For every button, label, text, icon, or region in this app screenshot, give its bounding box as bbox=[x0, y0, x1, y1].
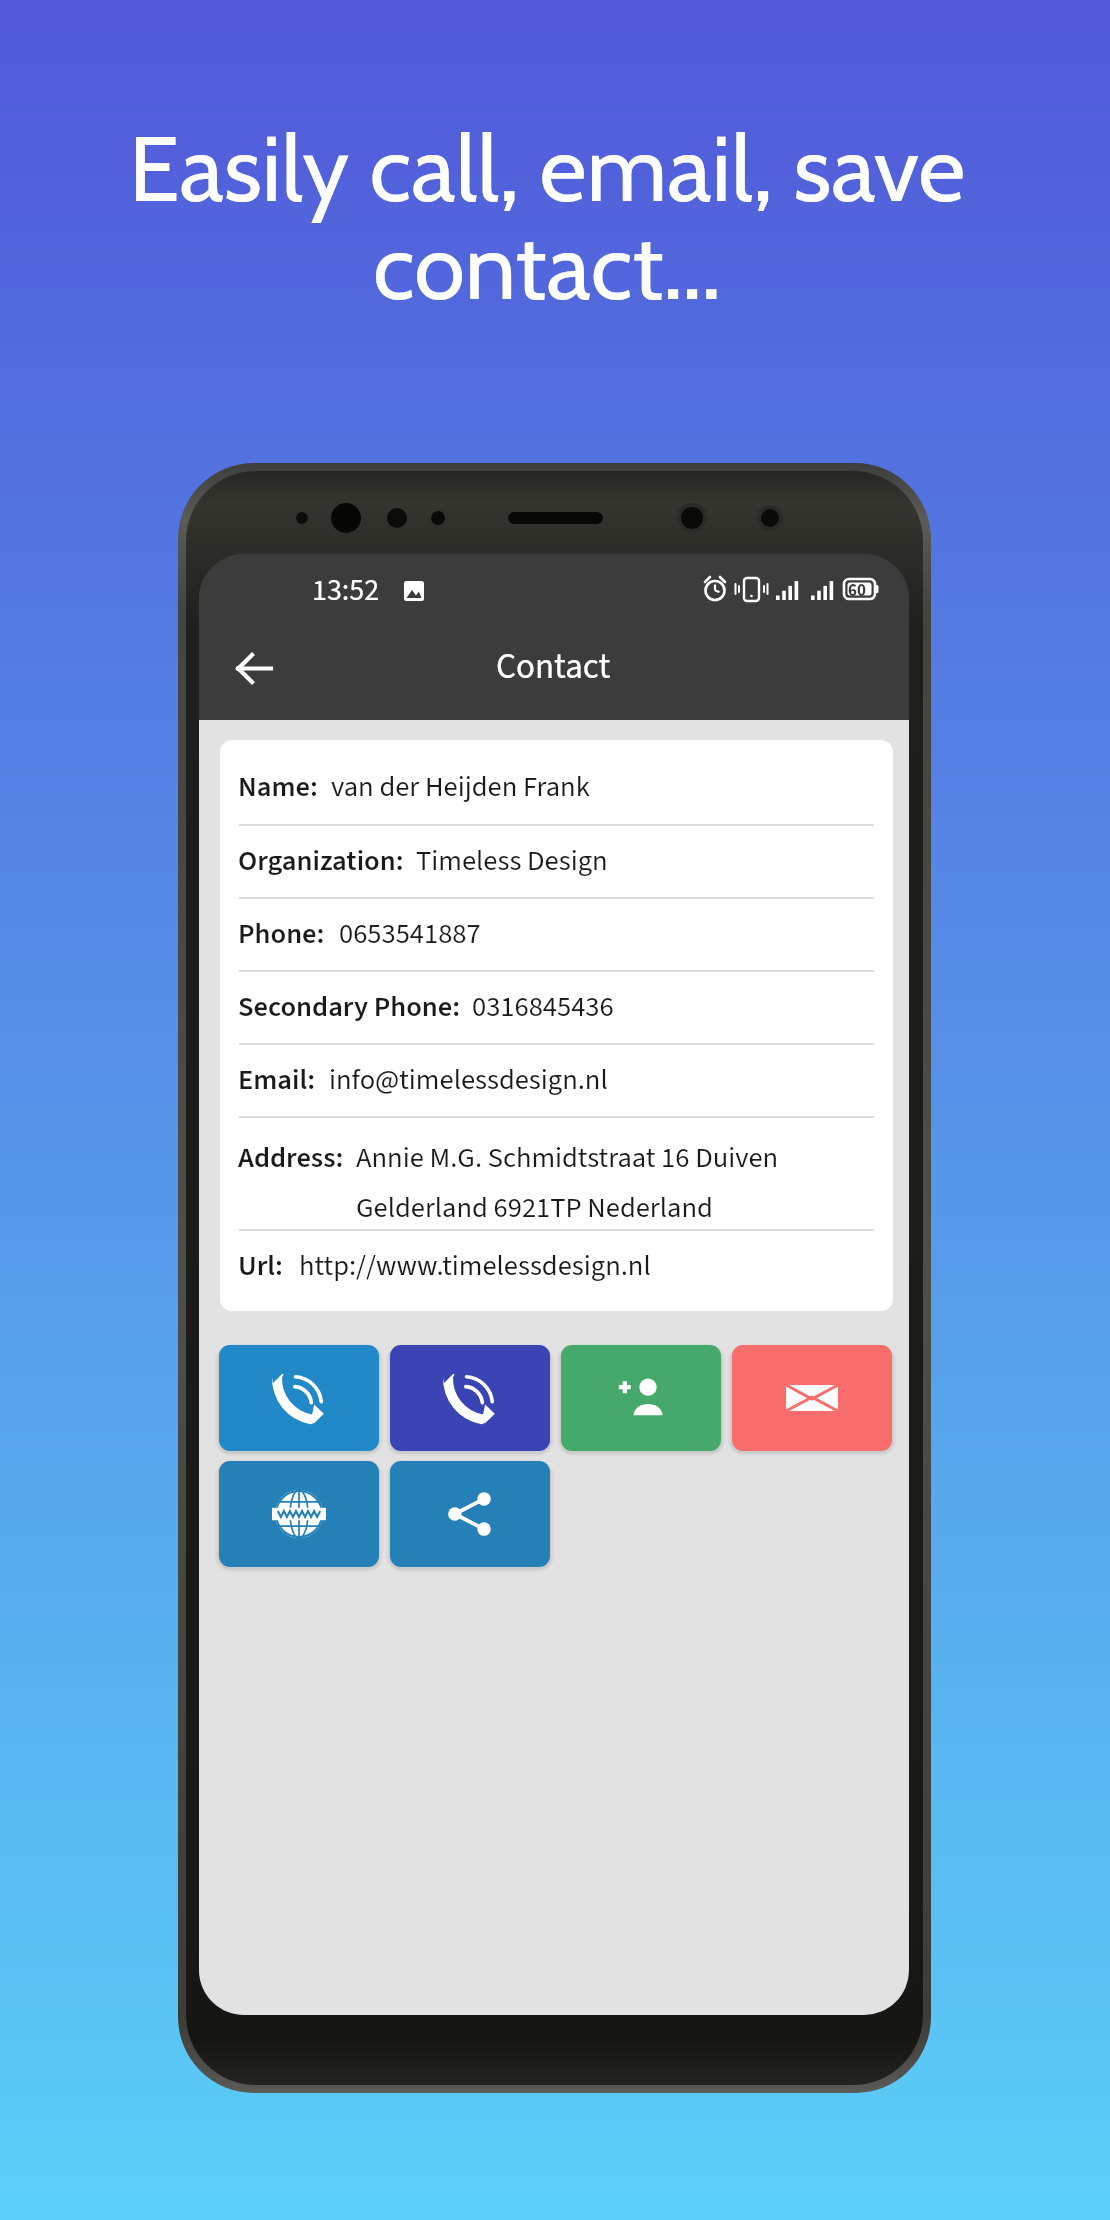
button[interactable]: Url: bbox=[220, 1231, 893, 1302]
button[interactable]: Send email bbox=[732, 1345, 892, 1451]
staticText: Organization: bbox=[238, 841, 404, 882]
staticText: 0316845436 bbox=[472, 987, 614, 1028]
button[interactable]: Open website bbox=[219, 1461, 379, 1567]
staticText: Url: bbox=[238, 1246, 283, 1287]
staticText: http://www.timelessdesign.nl bbox=[299, 1246, 651, 1287]
staticText: Phone: bbox=[238, 914, 325, 955]
button[interactable]: Name: bbox=[220, 750, 893, 824]
staticText: 60 bbox=[848, 579, 866, 603]
staticText: 13:52 bbox=[312, 569, 380, 612]
button[interactable]: Address: bbox=[220, 1118, 893, 1229]
button[interactable]: Call secondary number bbox=[390, 1345, 550, 1451]
staticText: Easily call, email, save contact... bbox=[0, 112, 1102, 322]
staticText: Name: bbox=[238, 767, 318, 808]
button[interactable]: Back bbox=[210, 624, 298, 712]
staticText: Annie M.G. Schmidtstraat 16 Duiven bbox=[356, 1138, 779, 1179]
button[interactable]: Share bbox=[390, 1461, 550, 1567]
button[interactable]: Call bbox=[219, 1345, 379, 1451]
staticText: Address: bbox=[238, 1138, 344, 1179]
staticText: Gelderland 6921TP Nederland bbox=[356, 1188, 713, 1229]
staticText: 0653541887 bbox=[339, 914, 481, 955]
staticText: Contact bbox=[496, 642, 611, 692]
staticText: Timeless Design bbox=[416, 841, 608, 882]
staticText: Secondary Phone: bbox=[238, 987, 461, 1028]
button[interactable]: Email: bbox=[220, 1045, 893, 1116]
button[interactable]: Phone: bbox=[220, 899, 893, 970]
staticText: Email: bbox=[238, 1060, 316, 1101]
staticText: info@timelessdesign.nl bbox=[329, 1060, 608, 1101]
staticText: van der Heijden Frank bbox=[331, 767, 590, 808]
button[interactable]: Organization: bbox=[220, 826, 893, 897]
button[interactable]: Secondary Phone: bbox=[220, 972, 893, 1043]
button[interactable]: Add contact bbox=[561, 1345, 721, 1451]
